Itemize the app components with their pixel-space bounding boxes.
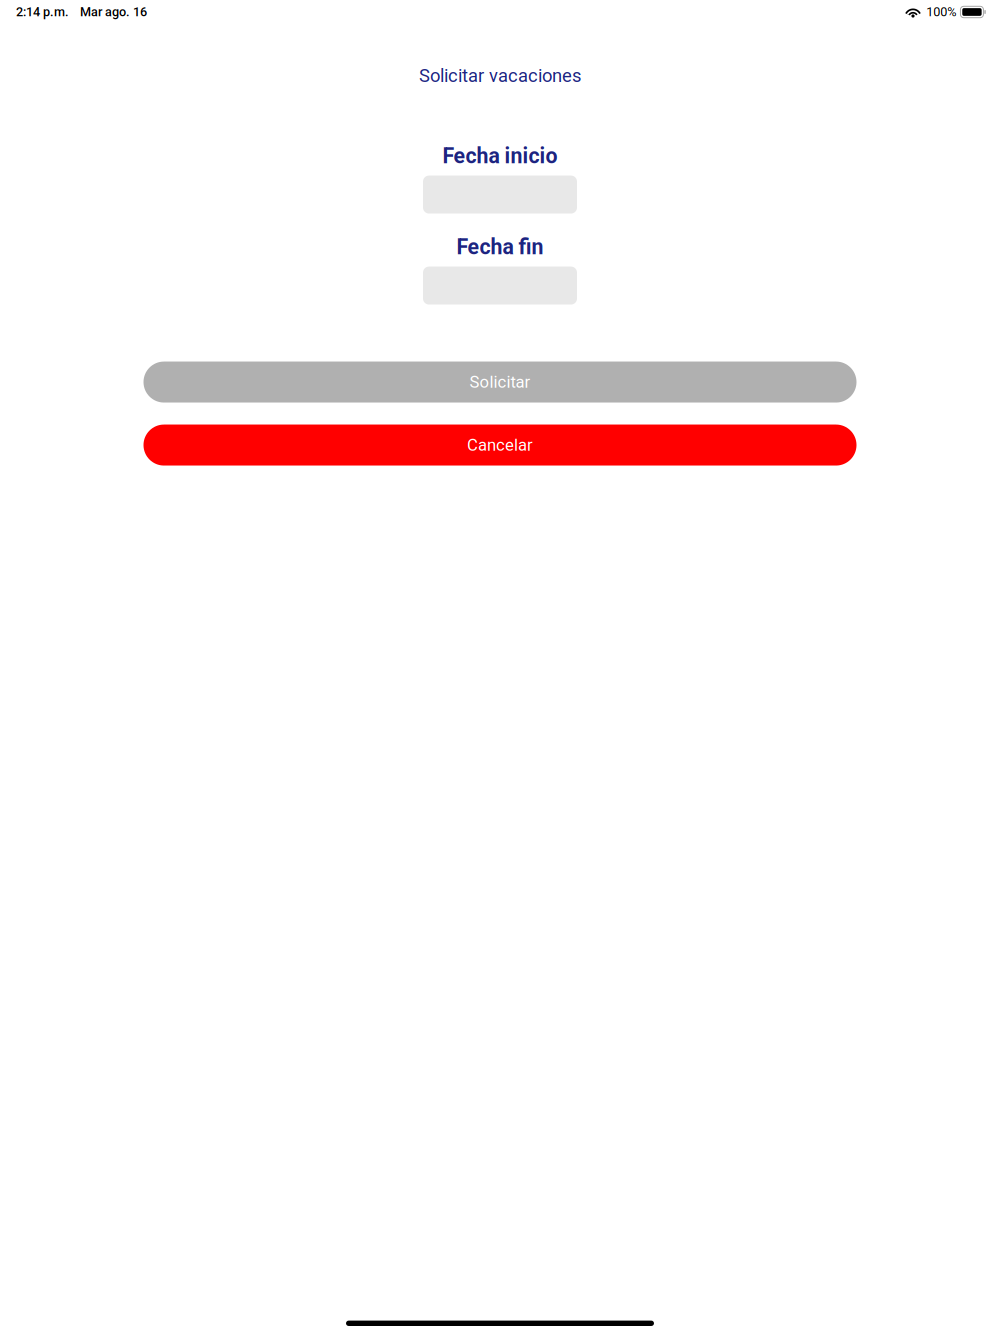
- staticText: Cancelar: [467, 435, 533, 455]
- staticText: Fecha fin: [456, 235, 543, 260]
- staticText: Mar ago. 16: [80, 5, 147, 19]
- button[interactable]: Cancelar: [143, 425, 856, 466]
- staticText: Fecha inicio: [442, 144, 557, 169]
- staticText: Solicitar vacaciones: [419, 65, 581, 87]
- staticText: Solicitar: [469, 372, 530, 392]
- button[interactable]: Solicitar: [143, 362, 856, 403]
- staticText: 100%: [926, 5, 956, 19]
- staticText: 2:14 p.m.: [16, 5, 69, 19]
